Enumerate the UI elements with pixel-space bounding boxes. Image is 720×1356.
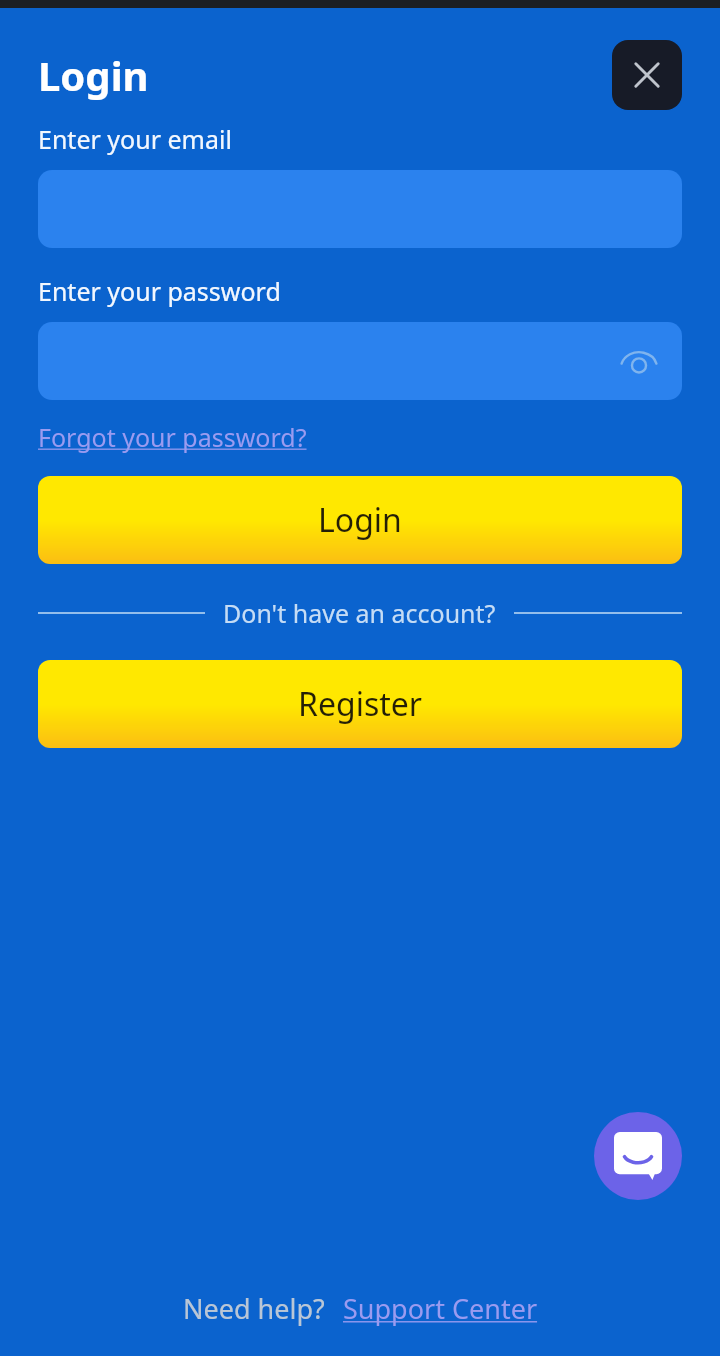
button[interactable]: Show password [616, 338, 662, 384]
button[interactable]: Register [38, 660, 682, 748]
staticText: Support Center [343, 1290, 538, 1327]
staticText: Need help? [183, 1290, 325, 1327]
staticText: Enter your email [38, 122, 232, 156]
button[interactable]: Password input field [38, 322, 682, 400]
button[interactable]: Login [38, 476, 682, 564]
staticText: Login [38, 48, 149, 102]
button[interactable]: Open chat support [594, 1112, 682, 1200]
button[interactable]: Support Center [343, 1290, 538, 1327]
staticText: Login [318, 498, 402, 542]
staticText: Register [298, 682, 423, 726]
staticText: Don't have an account? [223, 596, 496, 630]
staticText: Enter your password [38, 274, 281, 308]
staticText: Forgot your password? [38, 420, 307, 454]
button[interactable]: Forgot your password? [38, 420, 307, 454]
button[interactable]: Close [612, 40, 682, 110]
